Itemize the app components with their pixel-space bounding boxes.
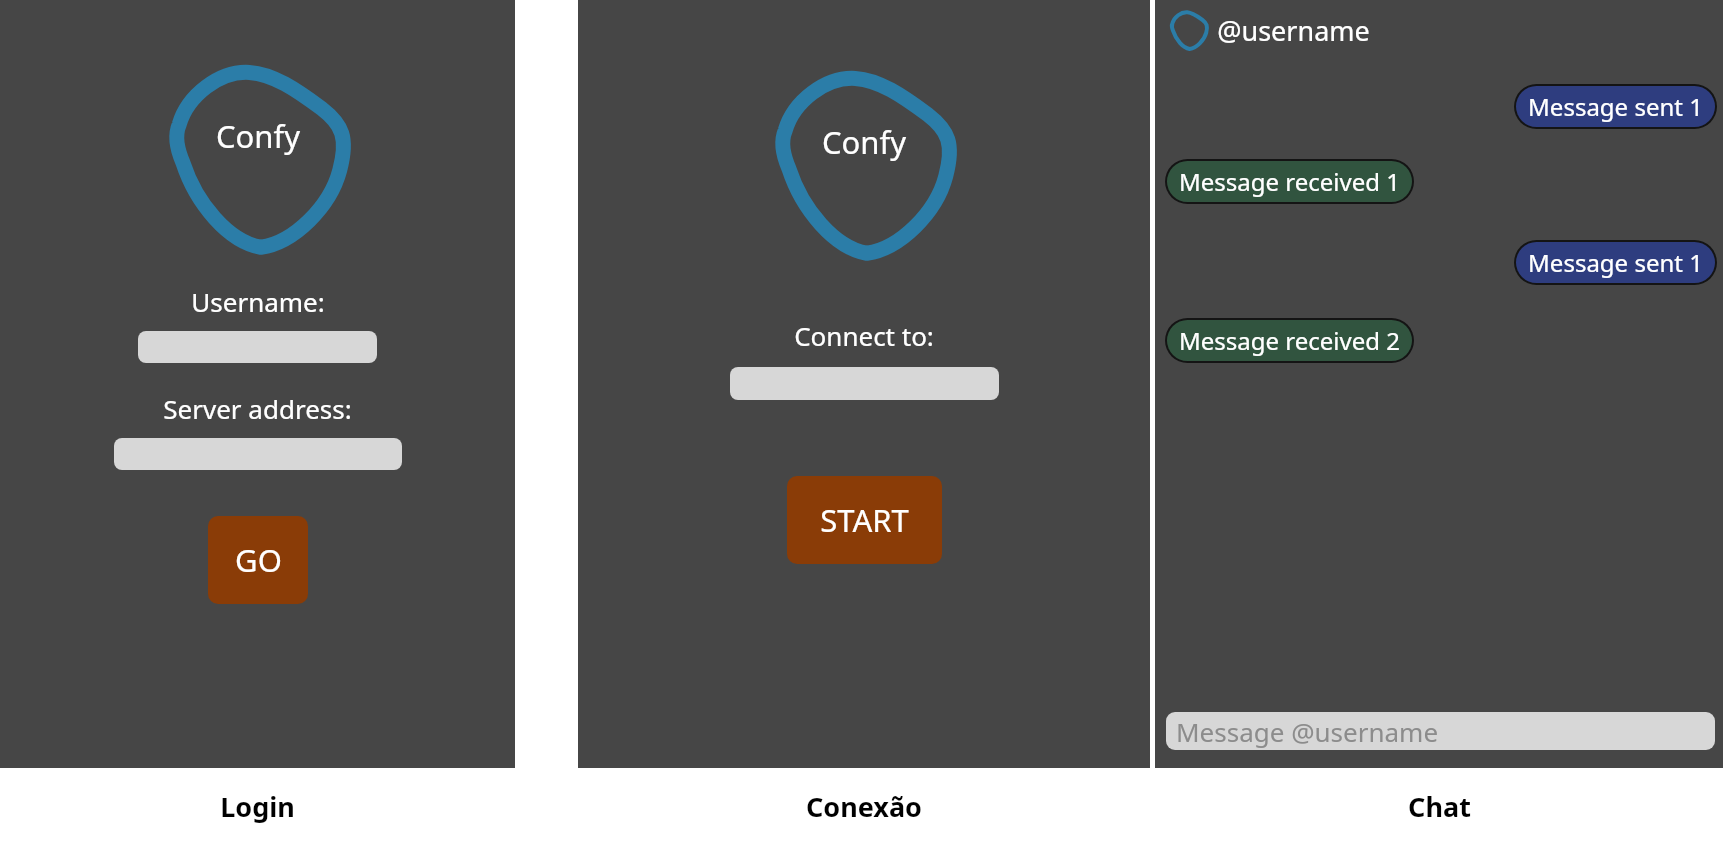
staticText: Connect to: <box>794 318 934 353</box>
button[interactable] <box>114 438 402 470</box>
button[interactable]: GO <box>208 516 308 604</box>
staticText: Confy <box>216 115 300 157</box>
staticText: @username <box>1217 12 1370 49</box>
staticText: Message received 2 <box>1179 324 1400 357</box>
staticText: Login <box>220 788 295 825</box>
staticText: Message @username <box>1176 714 1439 749</box>
button[interactable]: Message sent 1 <box>1528 246 1703 279</box>
button[interactable]: Message @username <box>1166 712 1715 750</box>
button[interactable]: Confy <box>1169 10 1370 50</box>
staticText: START <box>820 499 909 541</box>
staticText: GO <box>235 539 282 581</box>
staticText: Message received 1 <box>1179 165 1400 198</box>
staticText: Conexão <box>806 788 922 825</box>
staticText: Chat <box>1408 788 1471 825</box>
button[interactable]: START <box>787 476 942 564</box>
staticText: Confy <box>822 121 906 163</box>
staticText: Username: <box>191 284 325 319</box>
button[interactable]: Message received 2 <box>1179 324 1400 357</box>
staticText: Server address: <box>163 391 352 426</box>
button[interactable]: Message sent 1 <box>1528 90 1703 123</box>
staticText: Message sent 1 <box>1528 90 1703 123</box>
staticText: Message sent 1 <box>1528 246 1703 279</box>
button[interactable] <box>138 331 377 363</box>
button[interactable] <box>730 367 999 400</box>
button[interactable]: Message received 1 <box>1179 165 1400 198</box>
other: Confy <box>1169 10 1209 50</box>
